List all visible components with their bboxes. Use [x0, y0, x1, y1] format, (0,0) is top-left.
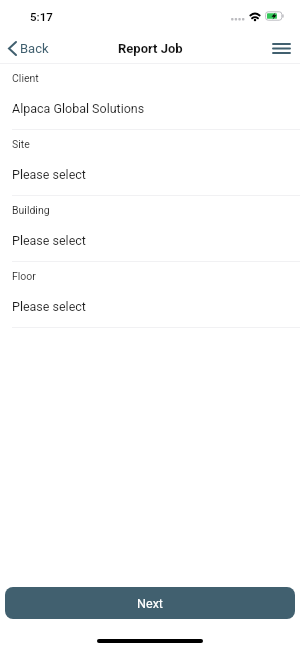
- staticText: 5:17: [30, 10, 53, 23]
- staticText: Client: [12, 72, 39, 84]
- button[interactable]: Floor: [0, 262, 300, 328]
- button[interactable]: Next: [5, 587, 295, 619]
- staticText: Alpaca Global Solutions: [12, 101, 145, 116]
- staticText: Please select: [12, 299, 86, 314]
- staticText: Next: [137, 596, 163, 611]
- staticText: Building: [12, 204, 50, 216]
- button[interactable]: Back: [0, 36, 58, 61]
- staticText: Back: [20, 41, 49, 56]
- button[interactable]: Site: [0, 130, 300, 196]
- staticText: Report Job: [118, 41, 183, 56]
- staticText: Please select: [12, 167, 86, 182]
- button[interactable]: Client: [0, 64, 300, 130]
- staticText: Site: [12, 138, 30, 150]
- staticText: Floor: [12, 270, 36, 282]
- staticText: Please select: [12, 233, 86, 248]
- button[interactable]: Menu: [263, 37, 300, 60]
- button[interactable]: Building: [0, 196, 300, 262]
